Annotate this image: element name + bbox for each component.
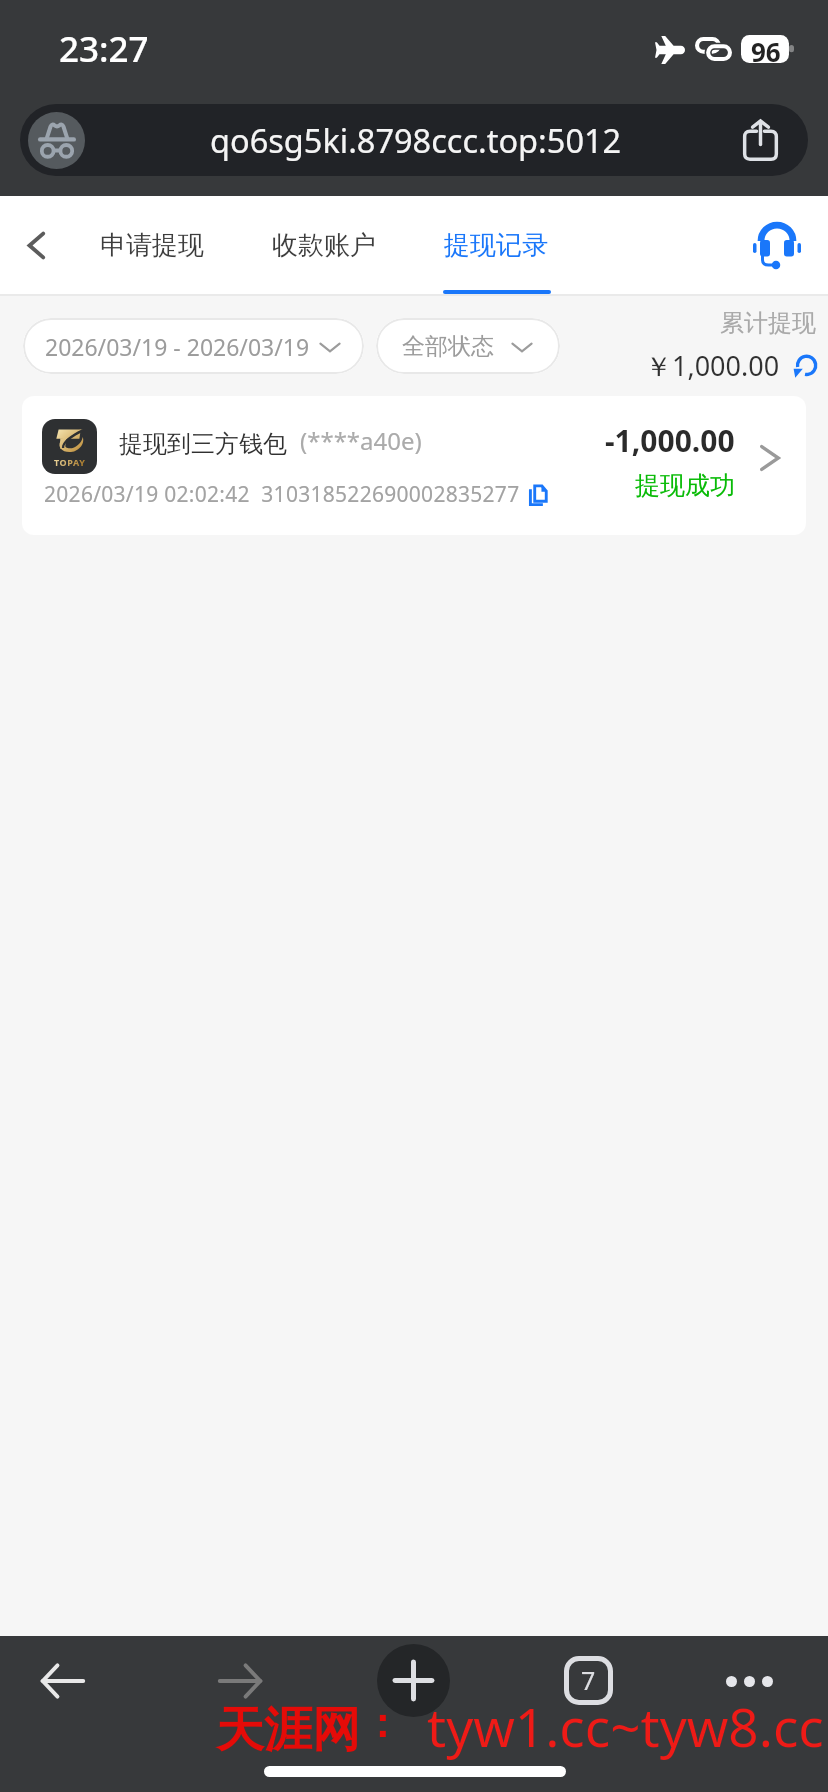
staticText: 收款账户 [272,229,376,262]
button[interactable]: Forward [217,1658,263,1704]
button[interactable]: Copy [526,481,554,509]
staticText: 提现到三方钱包 [119,429,287,459]
staticText: tyw1.cc~tyw8.cc [427,1690,824,1762]
staticText: 累计提现 [720,308,816,338]
staticText: 96 [751,34,781,62]
staticText: 天涯网 [216,1700,360,1760]
staticText: 申请提现 [100,229,204,262]
button[interactable]: More [717,1658,781,1704]
button[interactable]: 2026/03/19 - 2026/03/19 [23,318,364,374]
staticText: 23:27 [59,25,149,73]
button[interactable]: TOPAY [22,396,806,535]
button[interactable]: Back [40,1658,86,1704]
button[interactable]: 提现记录 [444,229,548,262]
staticText: 提现成功 [635,470,735,501]
button[interactable]: Refresh [791,352,819,380]
staticText: -1,000.00 [605,420,735,461]
button[interactable]: Customer service [745,213,809,277]
button[interactable]: Private browsing [20,104,808,176]
button[interactable]: Private browsing [28,112,85,169]
staticText: TOPAY [54,456,86,468]
button[interactable]: New tab [377,1644,450,1717]
button[interactable]: 申请提现 [100,229,204,262]
button[interactable]: 全部状态 [376,318,560,374]
staticText: (****a40e) [300,424,422,457]
staticText: 2026/03/19 - 2026/03/19 [45,331,310,362]
staticText: ￥1,000.00 [645,347,780,384]
button[interactable]: Share [732,104,788,176]
staticText: 2026/03/19 02:02:42 31031852269000283527… [44,480,520,509]
button[interactable]: Tabs [564,1656,613,1705]
button[interactable]: Back [8,217,64,273]
staticText: qo6sg5ki.8798ccc.top:5012 [210,118,622,162]
button[interactable]: 收款账户 [272,229,376,262]
staticText: 提现记录 [444,229,548,262]
staticText: 7 [581,1663,596,1697]
staticText: ： [362,1698,402,1748]
staticText: 全部状态 [402,332,494,361]
